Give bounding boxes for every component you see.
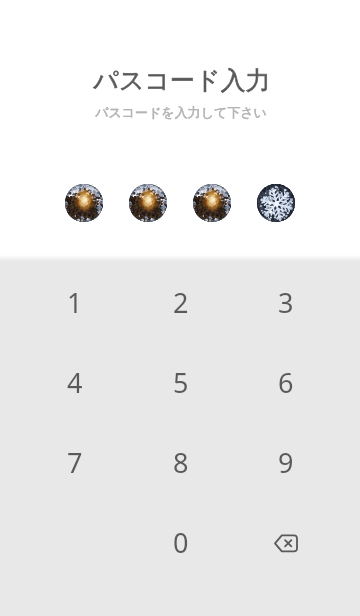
staticText: 5 xyxy=(173,364,189,401)
staticText: 0 xyxy=(173,524,189,561)
staticText: パスコードを入力して下さい xyxy=(1,104,360,120)
staticText: 9 xyxy=(278,444,294,481)
button[interactable]: 9 xyxy=(233,422,338,502)
staticText: 8 xyxy=(173,444,189,481)
button[interactable]: Delete xyxy=(233,502,338,582)
button[interactable]: 7 xyxy=(22,422,128,502)
button[interactable]: 6 xyxy=(233,342,338,422)
staticText: パスコード入力 xyxy=(2,65,360,96)
staticText: パスコードを入力して下さい xyxy=(1,104,360,120)
button[interactable]: 4 xyxy=(22,342,128,422)
button[interactable]: 5 xyxy=(128,342,233,422)
staticText: 3 xyxy=(278,284,294,321)
button[interactable]: 3 xyxy=(233,262,338,342)
staticText: 4 xyxy=(67,364,83,401)
button[interactable]: 2 xyxy=(128,262,233,342)
staticText: 6 xyxy=(278,364,294,401)
staticText: 7 xyxy=(67,444,83,481)
button[interactable]: 8 xyxy=(128,422,233,502)
staticText: パスコード入力 xyxy=(2,65,360,96)
button[interactable]: 1 xyxy=(22,262,128,342)
staticText: 1 xyxy=(67,284,83,321)
button[interactable]: 0 xyxy=(128,502,233,582)
staticText: 2 xyxy=(173,284,189,321)
